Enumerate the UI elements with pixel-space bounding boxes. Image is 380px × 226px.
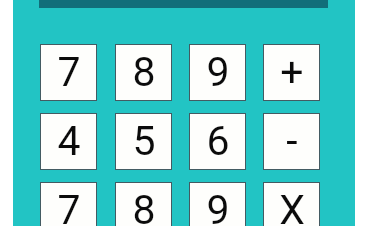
- button[interactable]: 7: [40, 44, 97, 101]
- button[interactable]: 8: [115, 44, 172, 101]
- staticText: 8: [132, 186, 156, 226]
- staticText: 9: [206, 186, 230, 226]
- button[interactable]: 5: [115, 113, 172, 170]
- button[interactable]: -: [263, 113, 320, 170]
- staticText: 6: [206, 117, 230, 165]
- staticText: -: [286, 117, 298, 165]
- staticText: 7: [57, 186, 81, 226]
- button[interactable]: +: [263, 44, 320, 101]
- button[interactable]: 4: [40, 113, 97, 170]
- button[interactable]: 8: [115, 182, 172, 226]
- staticText: 4: [57, 117, 81, 165]
- staticText: +: [280, 48, 304, 96]
- staticText: X: [279, 186, 305, 226]
- button[interactable]: 9: [189, 182, 246, 226]
- staticText: 8: [132, 48, 156, 96]
- staticText: 5: [132, 117, 156, 165]
- button[interactable]: 6: [189, 113, 246, 170]
- button[interactable]: X: [263, 182, 320, 226]
- staticText: 7: [57, 48, 81, 96]
- button[interactable]: 7: [40, 182, 97, 226]
- staticText: 9: [206, 48, 230, 96]
- button[interactable]: 9: [189, 44, 246, 101]
